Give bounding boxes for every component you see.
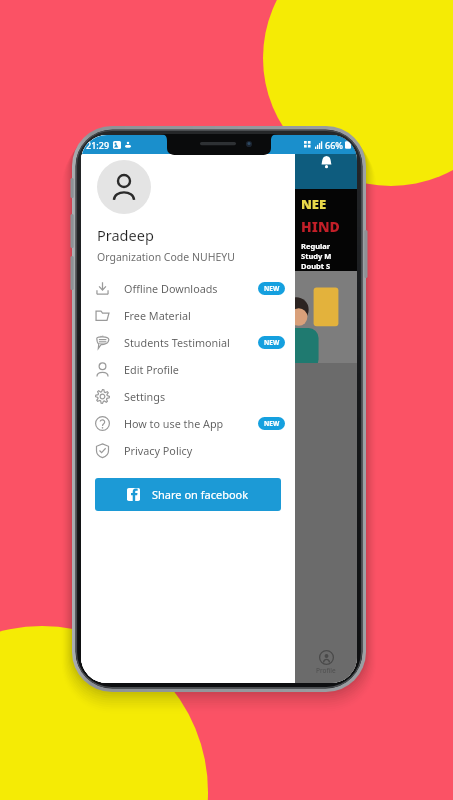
button[interactable]: Edit Profile: [81, 356, 295, 383]
staticText: How to use the App: [124, 416, 224, 431]
button[interactable]: Profile photo: [97, 160, 151, 214]
staticText: Pradeep: [97, 225, 154, 245]
staticText: Offline Downloads: [124, 281, 218, 296]
button[interactable]: Share on facebook: [95, 478, 281, 511]
staticText: Students Testimonial: [124, 335, 230, 350]
button[interactable]: Free Material: [81, 302, 295, 329]
staticText: 21:29: [86, 139, 110, 151]
staticText: Regular: [301, 241, 331, 251]
staticText: NEE: [301, 195, 327, 213]
staticText: 66%: [325, 139, 343, 151]
staticText: Free Material: [124, 308, 191, 323]
button[interactable]: Privacy Policy: [81, 437, 295, 464]
staticText: Settings: [124, 389, 166, 404]
button[interactable]: Offline Downloads: [81, 275, 295, 302]
staticText: Privacy Policy: [124, 443, 193, 458]
staticText: Edit Profile: [124, 362, 179, 377]
button[interactable]: Settings: [81, 383, 295, 410]
staticText: NEW: [264, 338, 280, 347]
staticText: Doubt S: [301, 261, 331, 271]
staticText: HIND: [301, 217, 340, 236]
staticText: Organization Code NUHEYU: [97, 250, 235, 264]
staticText: NEW: [264, 419, 280, 428]
button[interactable]: How to use the App: [81, 410, 295, 437]
button[interactable]: Notifications: [313, 149, 339, 175]
button[interactable]: Profile: [295, 641, 357, 683]
staticText: Share on facebook: [152, 487, 249, 502]
staticText: Profile: [316, 666, 336, 675]
button[interactable]: Students Testimonial: [81, 329, 295, 356]
staticText: Study M: [301, 251, 332, 261]
staticText: NEW: [264, 284, 280, 293]
